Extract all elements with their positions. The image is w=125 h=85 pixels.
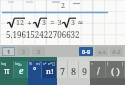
staticText: 5.196152422706632 [6, 29, 80, 40]
staticText: [ [107, 61, 109, 66]
staticText: e [19, 65, 24, 77]
button[interactable]: a-z [95, 47, 108, 56]
button[interactable]: log [0, 61, 14, 78]
staticText: ( ) [111, 65, 120, 77]
staticText: 1 [7, 48, 11, 55]
staticText: log [1, 61, 7, 66]
button[interactable]: log₂ [14, 61, 28, 78]
button[interactable]: 2 [17, 47, 30, 56]
staticText: 8 [71, 65, 77, 77]
button[interactable]: % [28, 61, 42, 78]
button[interactable]: 3 [32, 47, 45, 56]
staticText: 0-9 [82, 48, 91, 55]
button[interactable]: x² [42, 61, 57, 78]
staticText: 3 [57, 17, 62, 27]
staticText: 3 [37, 48, 41, 55]
staticText: 3 [42, 18, 46, 28]
button[interactable]: 12 [7, 15, 84, 29]
staticText: + [27, 17, 32, 28]
staticText: 7 [60, 65, 66, 77]
staticText: ÷ [91, 61, 94, 66]
button[interactable]: 0-9 [79, 47, 93, 56]
staticText: log₂ [15, 61, 22, 66]
staticText: ° [33, 65, 37, 77]
button[interactable]: 8 [68, 61, 79, 78]
staticText: ≈ [77, 18, 84, 27]
staticText: x² [43, 61, 47, 66]
staticText: x^□ [48, 61, 56, 66]
staticText: 9 [82, 65, 88, 77]
staticText: n√ [36, 61, 41, 66]
staticText: A-Z [112, 48, 121, 55]
button[interactable]: 9 [79, 61, 90, 78]
staticText: n! [46, 66, 54, 76]
staticText: % [29, 61, 32, 66]
staticText: π [4, 65, 10, 77]
staticText: = [50, 17, 55, 28]
button[interactable]: A-Z [110, 47, 123, 56]
staticText: 3 [71, 18, 75, 28]
button[interactable]: ÷ [90, 61, 106, 78]
staticText: a-z [98, 48, 106, 55]
staticText: / [97, 64, 100, 77]
staticText: 12 [16, 18, 24, 28]
button[interactable]: 1 [2, 47, 15, 56]
staticText: 2 [22, 48, 26, 55]
button[interactable]: 7 [57, 61, 68, 78]
button[interactable]: [ [106, 61, 125, 78]
staticText: ] [122, 61, 124, 66]
staticText: 2 [61, 1, 65, 11]
